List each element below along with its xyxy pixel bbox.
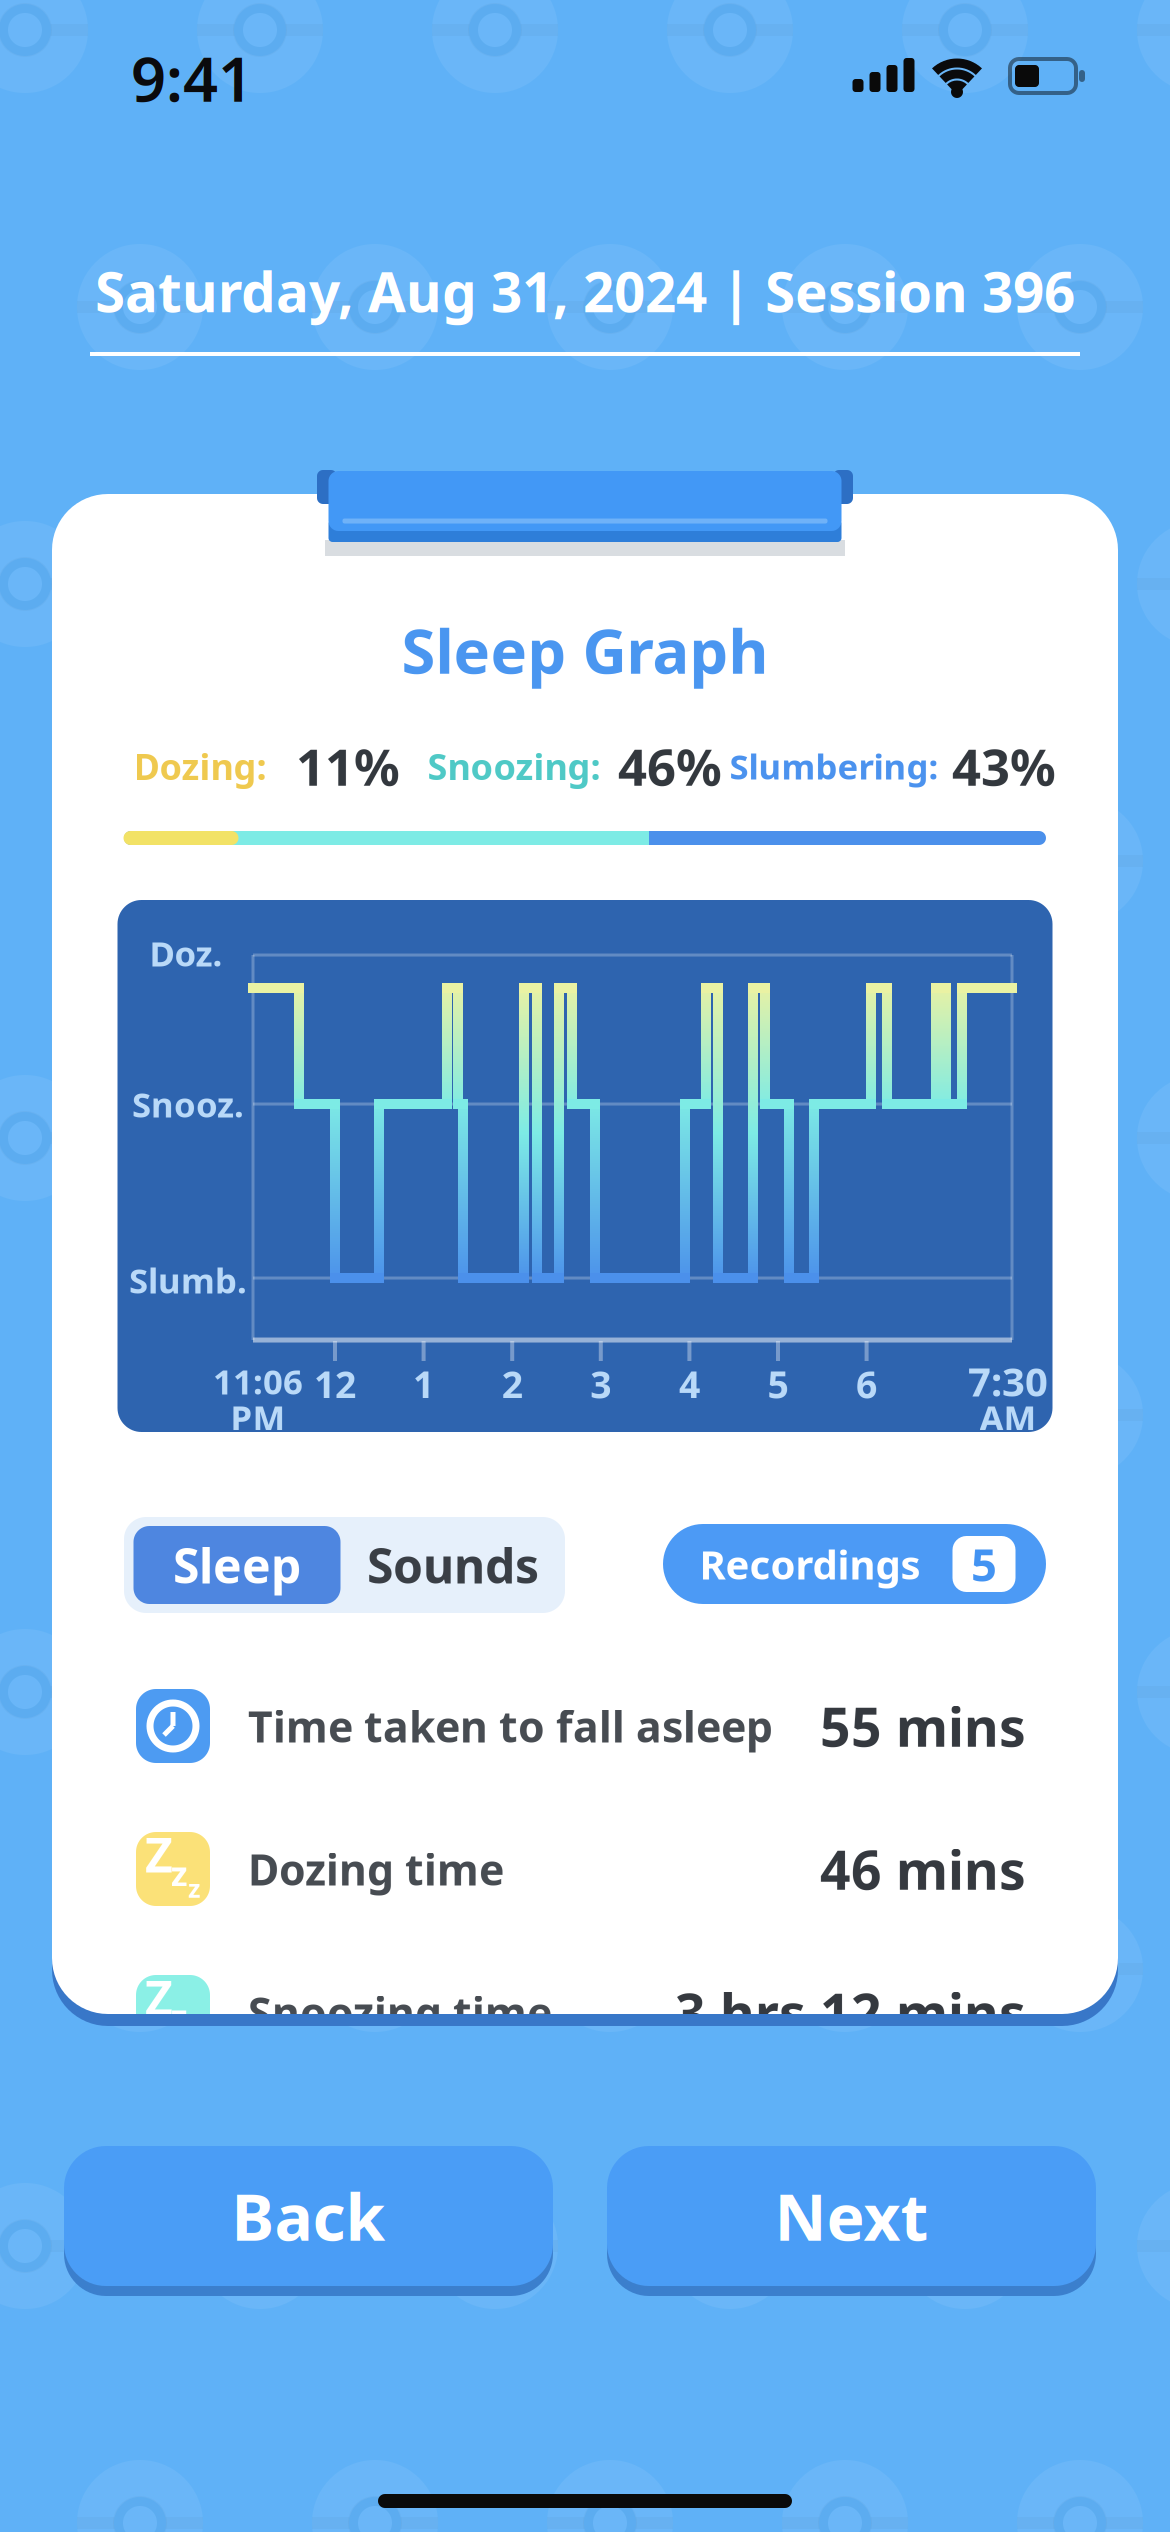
staticText: Dozing: — [133, 742, 266, 790]
button[interactable]: Sounds — [367, 1533, 539, 1597]
staticText: Next — [774, 2173, 928, 2258]
staticText: PM — [230, 1394, 285, 1440]
staticText: 11% — [296, 732, 400, 800]
button[interactable]: Sleep — [133, 1526, 340, 1604]
staticText: 5 — [767, 1359, 788, 1409]
staticText: 12 — [314, 1359, 356, 1409]
button[interactable]: Next — [607, 2146, 1096, 2286]
staticText: Back — [231, 2173, 385, 2258]
staticText: Snoozing time — [248, 1984, 552, 2040]
staticText: 3 hrs 12 mins — [675, 1977, 1026, 2047]
staticText: 55 mins — [820, 1691, 1026, 1761]
staticText: z — [170, 1993, 187, 2039]
staticText: Recordings — [699, 1537, 920, 1590]
staticText: 46% — [618, 732, 722, 800]
staticText: Snoozing: — [427, 742, 600, 790]
staticText: Slumbering: — [729, 743, 938, 789]
staticText: 5 — [971, 1534, 997, 1594]
staticText: AM — [979, 1394, 1036, 1440]
staticText: Z — [145, 1822, 173, 1886]
staticText: Snooz. — [132, 1081, 244, 1127]
staticText: Z — [145, 1965, 173, 2029]
staticText: 1 — [413, 1359, 434, 1409]
staticText: Sleep Graph — [401, 609, 768, 691]
staticText: 2 — [502, 1359, 523, 1409]
staticText: Doz. — [149, 930, 222, 976]
staticText: 4 — [679, 1359, 700, 1409]
staticText: 11:06 — [213, 1358, 303, 1404]
staticText: 6 — [856, 1359, 877, 1409]
button[interactable]: Recordings — [663, 1524, 1046, 1604]
staticText: Sounds — [367, 1533, 539, 1597]
staticText: z — [170, 1850, 187, 1896]
button[interactable] — [124, 1517, 565, 1613]
staticText: z — [188, 1871, 200, 1905]
staticText: 46 mins — [820, 1834, 1026, 1904]
staticText: Time taken to fall asleep — [248, 1698, 773, 1754]
staticText: Sleep — [173, 1533, 301, 1597]
staticText: Dozing time — [248, 1841, 504, 1897]
staticText: 3 — [590, 1359, 611, 1409]
staticText: 7:30 — [968, 1354, 1048, 1407]
staticText: 9:41 — [131, 37, 253, 119]
staticText: Saturday, Aug 31, 2024 | Session 396 — [95, 255, 1075, 327]
staticText: z — [188, 2014, 200, 2048]
button[interactable]: Back — [64, 2146, 553, 2286]
staticText: Slumb. — [129, 1257, 247, 1303]
staticText: 43% — [952, 732, 1056, 800]
